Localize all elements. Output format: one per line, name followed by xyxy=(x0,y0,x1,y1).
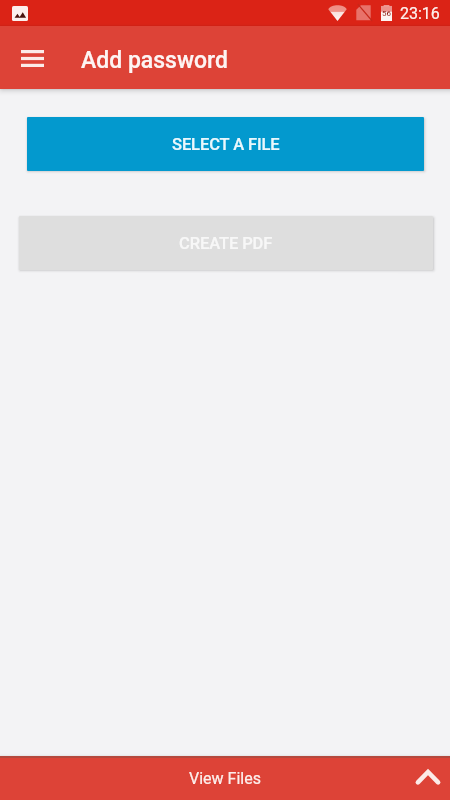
button[interactable]: View Files xyxy=(0,756,450,800)
staticText: SELECT A FILE xyxy=(172,135,280,154)
button[interactable]: SELECT A FILE xyxy=(27,117,424,171)
button[interactable]: Collapse xyxy=(410,760,446,796)
staticText: Add password xyxy=(81,47,228,74)
button[interactable]: CREATE PDF xyxy=(19,216,433,270)
staticText: 23:16 xyxy=(400,4,440,23)
staticText: 56 xyxy=(382,9,392,18)
button[interactable]: Open navigation menu xyxy=(8,34,56,82)
staticText: CREATE PDF xyxy=(179,234,273,253)
staticText: View Files xyxy=(189,769,261,788)
